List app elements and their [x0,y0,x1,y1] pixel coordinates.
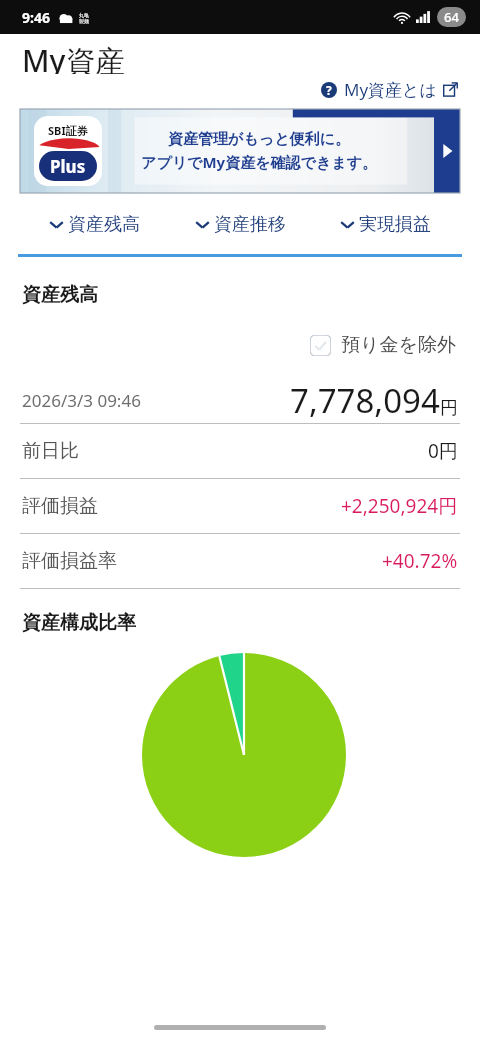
staticText: 円 [440,397,458,420]
staticText: 前日比 [22,439,79,463]
staticText: 資産構成比率 [22,611,136,635]
button[interactable]: 実現損益 [334,207,437,242]
staticText: 2026/3/3 09:46 [22,389,141,412]
staticText: 9:46 [22,8,50,27]
staticText: Plus [50,155,86,178]
button[interactable]: 資産残高 [43,207,146,242]
staticText: My資産 [22,40,126,74]
staticText: 評価損益 [22,494,98,518]
staticText: 7,778,094 [290,378,440,423]
button[interactable]: 資産推移 [189,207,292,242]
staticText: 0円 [428,438,458,464]
staticText: 預り金を除外 [341,333,456,357]
staticText: +2,250,924円 [341,493,458,519]
staticText: 資産推移 [214,213,286,236]
staticText: アプリでMy資産を確認できます。 [106,152,412,172]
button[interactable]: 資産管理がもっと便利に。 [20,109,460,193]
staticText: 資産残高 [68,213,140,236]
button[interactable]: ? [319,76,460,103]
staticText: SBI証券 [48,123,88,138]
staticText: 丸亀 [79,12,89,18]
staticText: 64 [444,8,459,26]
staticText: 評価損益率 [22,549,117,573]
button[interactable]: 預り金を除外 [306,329,460,361]
staticText: My資産とは [344,78,437,101]
staticText: +40.72% [382,548,458,574]
other: 次へ [434,109,460,193]
staticText: 資産残高 [22,283,98,307]
staticText: ? [326,82,332,98]
staticText: 製麺 [79,18,89,24]
staticText: 資産管理がもっと便利に。 [106,130,412,149]
staticText: 実現損益 [359,213,431,236]
